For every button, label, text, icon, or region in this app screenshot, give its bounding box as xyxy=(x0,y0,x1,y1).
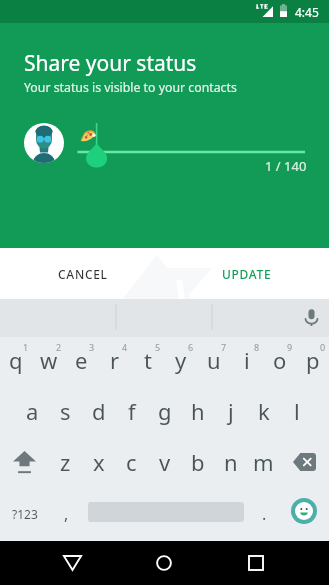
button[interactable]: j xyxy=(214,396,247,426)
button[interactable]: Emoji xyxy=(291,498,317,524)
staticText: b xyxy=(191,447,205,477)
button[interactable]: 6 xyxy=(164,341,197,381)
staticText: o xyxy=(273,345,287,375)
button[interactable]: 7 xyxy=(197,341,230,381)
staticText: f xyxy=(128,396,136,426)
button[interactable]: 0 xyxy=(296,341,329,381)
button[interactable]: UPDATE xyxy=(165,248,329,299)
button[interactable]: s xyxy=(49,396,82,426)
button[interactable]: 9 xyxy=(263,341,296,381)
staticText: CANCEL xyxy=(58,266,108,282)
staticText: UPDATE xyxy=(222,266,272,282)
button[interactable]: CANCEL xyxy=(0,248,165,299)
staticText: c xyxy=(126,447,137,477)
staticText: y xyxy=(175,345,187,375)
button[interactable]: f xyxy=(115,396,148,426)
button[interactable]: m xyxy=(247,437,280,487)
staticText: 6 xyxy=(188,341,194,353)
staticText: x xyxy=(93,447,105,477)
button[interactable]: 3 xyxy=(65,341,98,381)
staticText: 4 xyxy=(122,341,128,353)
button[interactable]: , xyxy=(50,487,83,541)
button[interactable]: . xyxy=(248,487,280,541)
staticText: 1 / 140 xyxy=(265,157,307,175)
staticText: 9 xyxy=(287,341,293,353)
staticText: t xyxy=(144,345,152,375)
staticText: u xyxy=(207,345,221,375)
button[interactable]: l xyxy=(280,396,313,426)
button[interactable]: Home xyxy=(141,541,187,585)
staticText: h xyxy=(191,396,205,426)
staticText: l xyxy=(294,396,300,426)
staticText: g xyxy=(158,396,172,426)
button[interactable]: 4 xyxy=(98,341,131,381)
button[interactable]: Backspace xyxy=(280,437,329,487)
staticText: 2 xyxy=(56,341,62,353)
button[interactable]: b xyxy=(181,437,214,487)
staticText: 7 xyxy=(221,341,227,353)
staticText: ?123 xyxy=(12,506,38,522)
staticText: Your status is visible to your contacts xyxy=(24,79,237,96)
staticText: 5 xyxy=(155,341,161,353)
button[interactable]: k xyxy=(247,396,280,426)
staticText: s xyxy=(60,396,71,426)
staticText: a xyxy=(26,396,39,426)
staticText: w xyxy=(40,345,58,375)
staticText: 4:45 xyxy=(295,4,319,20)
staticText: n xyxy=(224,447,238,477)
staticText: Share your status xyxy=(24,49,197,78)
staticText: d xyxy=(92,396,106,426)
button[interactable]: g xyxy=(148,396,181,426)
button[interactable]: Voice input xyxy=(300,306,323,329)
button[interactable]: Back xyxy=(49,541,95,585)
staticText: 0 xyxy=(320,341,326,353)
staticText: , xyxy=(64,503,69,525)
button[interactable]: n xyxy=(214,437,247,487)
staticText: r xyxy=(110,345,120,375)
button[interactable]: 5 xyxy=(131,341,164,381)
button[interactable]: 8 xyxy=(230,341,263,381)
button[interactable]: v xyxy=(148,437,181,487)
staticText: 3 xyxy=(89,341,95,353)
button[interactable]: c xyxy=(115,437,148,487)
staticText: i xyxy=(244,345,250,375)
button[interactable]: 1 xyxy=(0,341,32,381)
staticText: v xyxy=(159,447,171,477)
button[interactable]: d xyxy=(82,396,115,426)
button[interactable]: Shift xyxy=(0,437,49,487)
button[interactable]: 2 xyxy=(32,341,65,381)
staticText: z xyxy=(60,447,71,477)
staticText: . xyxy=(262,503,267,525)
staticText: 1 xyxy=(23,341,29,353)
staticText: p xyxy=(306,345,320,375)
button[interactable]: h xyxy=(181,396,214,426)
button[interactable]: a xyxy=(16,396,49,426)
button[interactable]: z xyxy=(49,437,82,487)
staticText: m xyxy=(253,447,274,477)
staticText: 8 xyxy=(254,341,260,353)
staticText: k xyxy=(258,396,270,426)
staticText: j xyxy=(228,396,234,426)
button[interactable]: x xyxy=(82,437,115,487)
button[interactable]: Recents xyxy=(233,541,279,585)
button[interactable]: ?123 xyxy=(0,487,50,541)
staticText: e xyxy=(75,345,88,375)
staticText: q xyxy=(9,345,23,375)
